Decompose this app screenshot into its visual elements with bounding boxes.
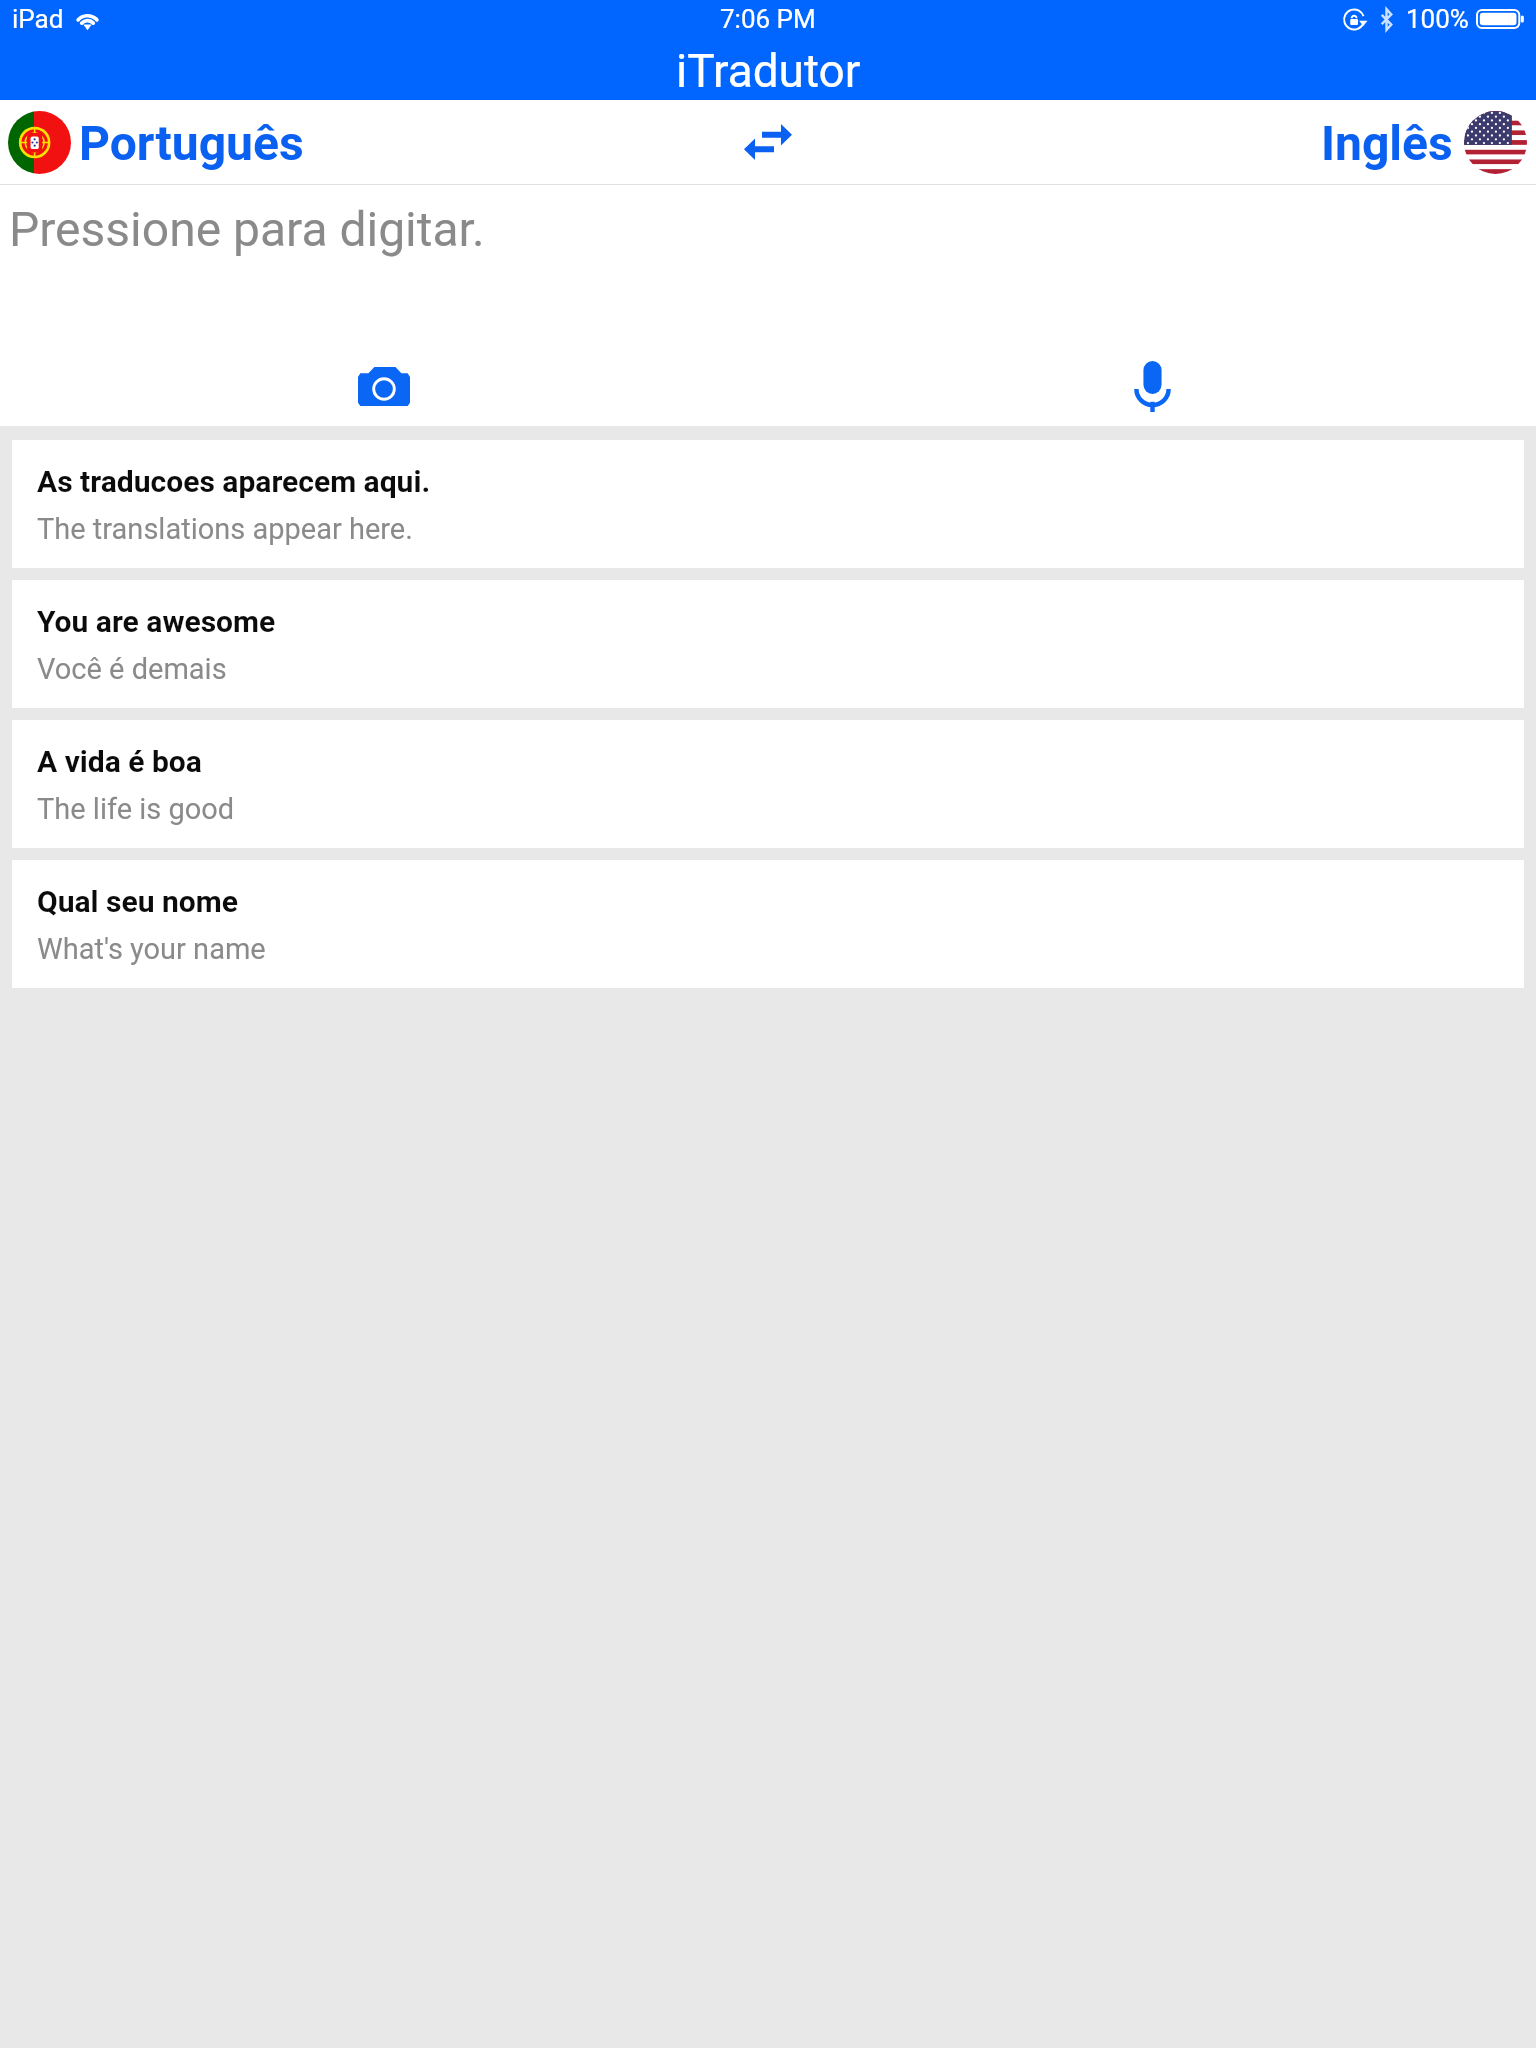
staticText: Você é demais bbox=[37, 652, 227, 686]
staticText: What's your name bbox=[37, 932, 266, 966]
staticText: iPad bbox=[12, 4, 64, 34]
button[interactable]: Microphone bbox=[1102, 346, 1202, 426]
button[interactable]: You are awesome bbox=[12, 580, 1524, 708]
staticText: 7:06 PM bbox=[720, 4, 816, 34]
button[interactable]: Qual seu nome bbox=[12, 860, 1524, 988]
button[interactable]: A vida é boa bbox=[12, 720, 1524, 848]
staticText: Inglês bbox=[1321, 115, 1453, 171]
staticText: Pressione para digitar. bbox=[9, 201, 485, 257]
button[interactable]: As traducoes aparecem aqui. bbox=[12, 440, 1524, 568]
button[interactable]: Português bbox=[8, 111, 304, 174]
button[interactable]: Swap languages bbox=[720, 104, 816, 180]
staticText: 100% bbox=[1406, 4, 1469, 34]
staticText: Qual seu nome bbox=[37, 884, 238, 919]
button[interactable]: Inglês bbox=[1321, 111, 1527, 174]
staticText: You are awesome bbox=[37, 604, 276, 639]
button[interactable]: Camera bbox=[334, 346, 434, 426]
staticText: A vida é boa bbox=[37, 744, 202, 779]
staticText: iTradutor bbox=[676, 44, 861, 98]
staticText: The life is good bbox=[37, 792, 235, 826]
staticText: The translations appear here. bbox=[37, 512, 413, 546]
button[interactable]: Pressione para digitar. bbox=[0, 185, 1536, 330]
staticText: As traducoes aparecem aqui. bbox=[37, 464, 431, 499]
staticText: Português bbox=[79, 115, 304, 171]
